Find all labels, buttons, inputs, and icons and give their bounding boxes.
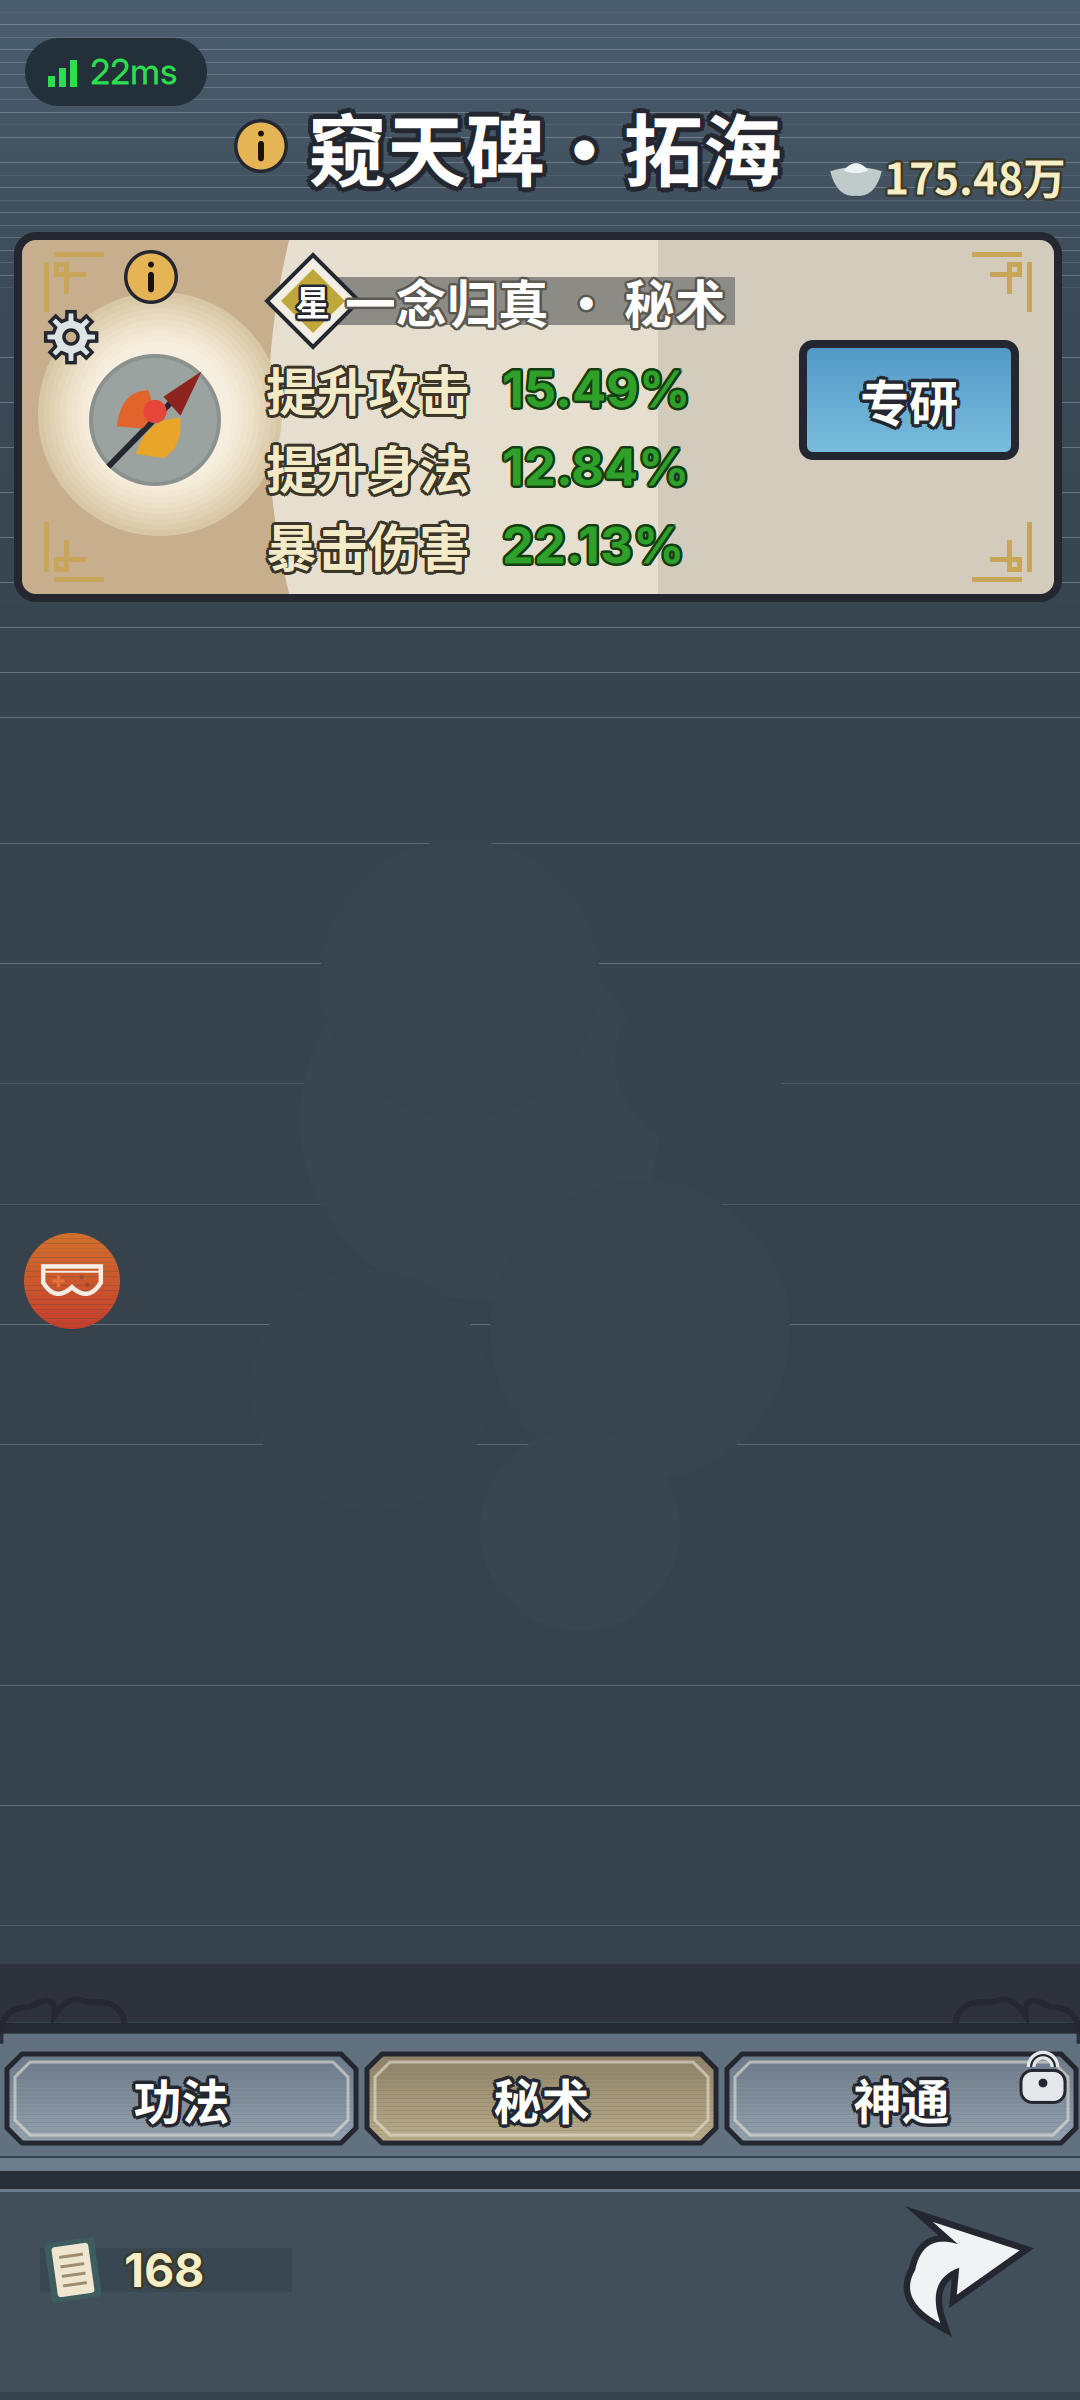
staticText: 175.48万 — [882, 143, 1064, 205]
button[interactable]: Skill settings — [45, 311, 97, 363]
staticText: 提升攻击 — [264, 350, 468, 423]
staticText: 窥天碑·拓海 — [304, 93, 778, 207]
staticText: 窥天碑·拓海 — [304, 85, 778, 199]
staticText: 提升身法 — [266, 427, 470, 501]
staticText: 秘术 — [493, 2060, 589, 2130]
button[interactable]: 秘术 — [367, 2054, 716, 2143]
staticText: 提升身法 — [268, 428, 472, 501]
staticText: 功法 — [133, 2064, 229, 2133]
staticText: 15.49% — [504, 358, 692, 420]
staticText: 神通 — [857, 2064, 953, 2133]
staticText: 秘术 — [490, 2064, 586, 2133]
staticText: 提升身法 — [263, 430, 467, 504]
staticText: 神通 — [856, 2061, 952, 2131]
staticText: 168 — [126, 2244, 206, 2300]
staticText: 暴击伤害 — [266, 511, 470, 585]
staticText: 15.49% — [502, 361, 690, 422]
staticText: 12.84% — [500, 438, 687, 499]
staticText: 168 — [124, 2242, 204, 2298]
staticText: 15.49% — [504, 356, 692, 418]
button[interactable]: Game assistant — [24, 1233, 120, 1329]
staticText: 175.48万 — [881, 145, 1063, 207]
staticText: 一念归真 · 秘术 — [347, 266, 728, 340]
staticText: 神通 — [856, 2066, 952, 2136]
staticText: 168 — [124, 2239, 204, 2296]
staticText: 168 — [122, 2244, 202, 2300]
staticText: 提升攻击 — [264, 355, 468, 428]
staticText: 一念归真 · 秘术 — [342, 264, 723, 338]
staticText: 一念归真 · 秘术 — [343, 266, 724, 340]
staticText: 神通 — [853, 2060, 949, 2130]
staticText: 星 — [295, 278, 330, 329]
staticText: 15.49% — [502, 356, 690, 417]
staticText: 专研 — [863, 362, 961, 433]
staticText: 提升攻击 — [266, 349, 470, 423]
staticText: 22.13% — [499, 514, 681, 576]
staticText: 12.84% — [502, 436, 689, 498]
staticText: 窥天碑·拓海 — [312, 85, 786, 199]
staticText: 星 — [297, 274, 332, 324]
staticText: 提升身法 — [264, 433, 468, 506]
staticText: 专研 — [857, 367, 955, 438]
button[interactable]: 神通 — [727, 2054, 1076, 2143]
staticText: 秘术 — [491, 2061, 587, 2131]
button[interactable]: Skill details — [124, 250, 178, 304]
staticText: 提升攻击 — [266, 355, 470, 429]
staticText: 12.84% — [504, 436, 691, 498]
staticText: 168 — [122, 2240, 202, 2296]
staticText: 175.48万 — [884, 145, 1066, 207]
staticText: 12.84% — [502, 439, 689, 500]
staticText: 专研 — [856, 364, 954, 436]
staticText: 12.84% — [502, 434, 689, 495]
staticText: 专研 — [863, 367, 961, 438]
button[interactable]: Share — [895, 2218, 1021, 2342]
staticText: 22.13% — [502, 514, 684, 576]
staticText: 星 — [298, 276, 333, 326]
staticText: 12.84% — [500, 434, 687, 496]
staticText: 功法 — [136, 2061, 232, 2131]
staticText: 功法 — [130, 2064, 226, 2133]
button[interactable]: 专研 — [803, 344, 1015, 456]
staticText: 神通 — [853, 2067, 949, 2137]
staticText: 175.48万 — [886, 147, 1068, 209]
staticText: 秘术 — [491, 2066, 587, 2136]
staticText: 神通 — [851, 2066, 947, 2136]
staticText: 168 — [124, 2244, 204, 2301]
staticText: 窥天碑·拓海 — [303, 89, 777, 203]
staticText: 秘术 — [493, 2067, 589, 2137]
staticText: 175.48万 — [884, 143, 1066, 204]
staticText: 秘术 — [496, 2061, 592, 2131]
staticText: 一念归真 · 秘术 — [345, 267, 726, 340]
staticText: 22.13% — [504, 514, 686, 576]
staticText: 15.49% — [500, 356, 688, 418]
button[interactable]: Network latency 22 milliseconds — [25, 38, 207, 106]
staticText: 星 — [295, 273, 330, 323]
staticText: 窥天碑·拓海 — [308, 84, 782, 198]
staticText: 一念归真 · 秘术 — [345, 262, 726, 335]
staticText: 星 — [294, 274, 329, 324]
staticText: 168 — [126, 2242, 206, 2298]
staticText: 15.49% — [502, 358, 690, 420]
staticText: 暴击伤害 — [266, 505, 470, 579]
staticText: 暴击伤害 — [268, 511, 472, 584]
staticText: 175.48万 — [886, 143, 1068, 205]
staticText: 168 — [121, 2242, 201, 2298]
staticText: 功法 — [131, 2066, 227, 2136]
staticText: 暴击伤害 — [268, 506, 472, 579]
staticText: 12.84% — [499, 436, 686, 498]
staticText: 神通 — [850, 2064, 946, 2133]
staticText: 22.13% — [504, 512, 686, 574]
staticText: 星 — [294, 278, 329, 328]
staticText: 一念归真 · 秘术 — [347, 264, 728, 338]
staticText: 提升攻击 — [263, 352, 467, 426]
staticText: 暴击伤害 — [263, 508, 467, 582]
staticText: 专研 — [857, 362, 955, 433]
staticText: 22.13% — [504, 516, 686, 577]
staticText: 专研 — [860, 361, 958, 432]
staticText: 175.48万 — [882, 147, 1064, 209]
staticText: 窥天碑·拓海 — [313, 89, 787, 203]
staticText: 提升身法 — [269, 430, 473, 504]
button[interactable]: 功法 — [7, 2054, 356, 2143]
button[interactable]: Information — [234, 119, 288, 173]
staticText: 提升攻击 — [269, 352, 473, 426]
